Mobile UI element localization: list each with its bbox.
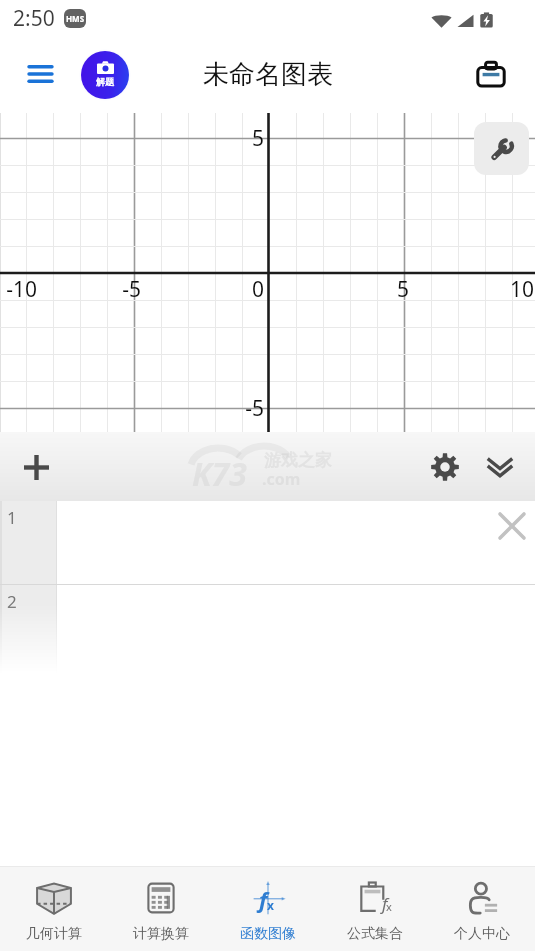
button[interactable]: 计算换算 [107,867,214,951]
button[interactable]: 1 [0,501,535,584]
button[interactable]: f [321,867,428,951]
staticText: 1 [7,506,17,529]
staticText: f [259,884,268,914]
staticText: -5 [245,394,264,420]
staticText: x [386,899,392,914]
staticText: 解题 [96,76,114,87]
staticText: -10 [6,275,37,301]
button[interactable]: Settings [423,445,467,489]
staticText: 几何计算 [26,925,82,943]
staticText: 游戏之家 [264,450,332,471]
staticText: -5 [122,275,141,301]
staticText: .com [262,468,301,490]
button[interactable]: Toolbox [469,52,513,96]
button[interactable]: Clear [493,507,531,545]
button[interactable]: Graph settings [474,122,529,175]
button[interactable]: 个人中心 [428,867,535,951]
staticText: 2 [7,590,17,613]
staticText: 10 [509,275,534,301]
staticText: 5 [251,124,264,150]
staticText: K73 [192,452,247,496]
staticText: 2:50 [13,4,55,33]
staticText: 未命名图表 [203,58,333,91]
staticText: 0 [251,275,264,301]
button[interactable]: f [214,867,321,951]
staticText: f [382,892,388,915]
staticText: 计算换算 [133,925,189,943]
staticText: 函数图像 [240,925,296,943]
button[interactable]: Collapse [478,445,522,489]
staticText: x [267,897,274,913]
button[interactable]: Menu [18,52,62,96]
button[interactable]: Scan to solve [81,51,129,99]
staticText: 5 [396,275,409,301]
staticText: 公式集合 [347,925,403,943]
staticText: HMS [66,13,85,24]
button[interactable]: 2 [0,585,535,675]
button[interactable]: Add expression [14,445,58,489]
staticText: 个人中心 [454,925,510,943]
button[interactable]: 几何计算 [0,867,107,951]
